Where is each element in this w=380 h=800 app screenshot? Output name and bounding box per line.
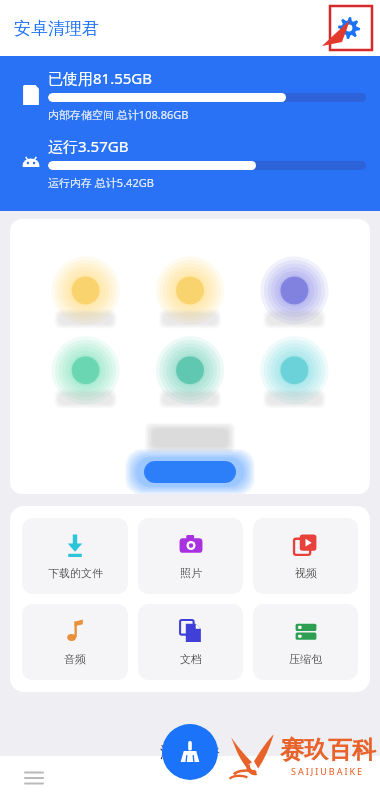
button[interactable]: Menu: [16, 760, 52, 796]
button[interactable]: 音频: [22, 604, 128, 680]
button[interactable]: 文档: [138, 604, 243, 680]
button[interactable]: Settings: [332, 11, 366, 45]
button[interactable]: 压缩包: [253, 604, 358, 680]
staticText: 下载的文件: [48, 566, 103, 580]
staticText: 安卓清理君: [14, 18, 99, 39]
staticText: 内部存储空间 总计108.86GB: [48, 107, 189, 122]
button[interactable]: 照片: [138, 518, 243, 594]
staticText: 没有文件: [160, 743, 220, 762]
staticText: 已使用81.55GB: [48, 68, 153, 88]
staticText: 压缩包: [289, 652, 322, 666]
staticText: 运行内存 总计5.42GB: [48, 175, 154, 190]
staticText: 赛玖百科: [280, 735, 376, 765]
button[interactable]: Clean: [162, 724, 218, 780]
staticText: 音频: [64, 652, 86, 666]
staticText: 文档: [180, 652, 202, 666]
button[interactable]: [10, 219, 370, 494]
button[interactable]: 下载的文件: [22, 518, 128, 594]
staticText: 照片: [180, 566, 202, 580]
staticText: SAIJIUBAIKE: [291, 765, 365, 777]
button[interactable]: 视频: [253, 518, 358, 594]
staticText: 视频: [295, 566, 317, 580]
staticText: 运行3.57GB: [48, 136, 129, 156]
